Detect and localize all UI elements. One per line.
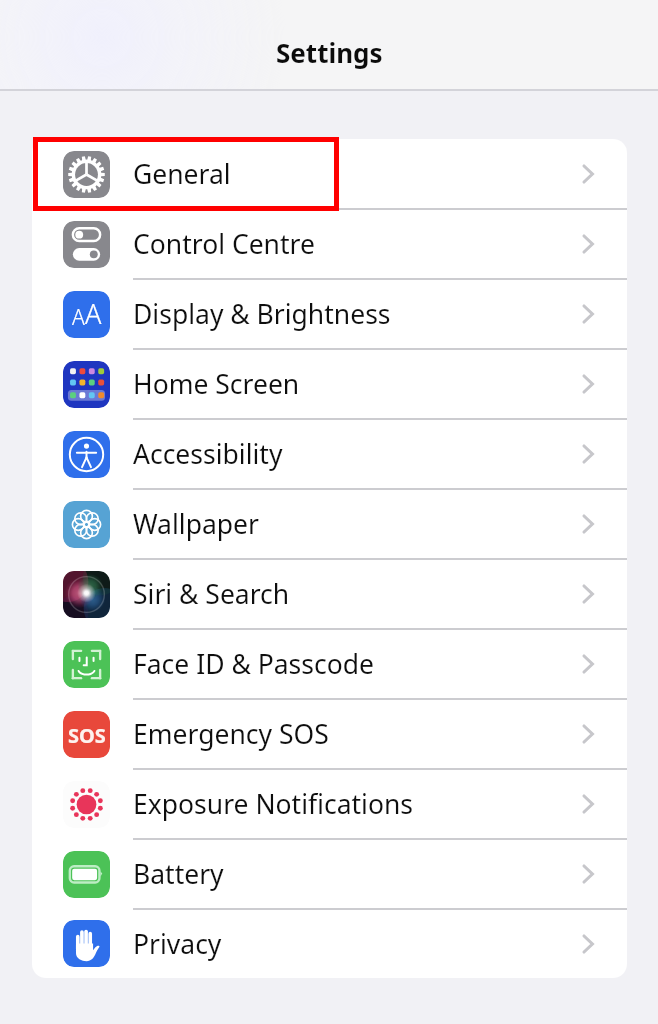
staticText: Emergency SOS (133, 716, 329, 752)
staticText: Privacy (133, 926, 222, 962)
button[interactable]: Siri & Search (32, 559, 627, 629)
button[interactable]: Control Centre (32, 209, 627, 279)
button[interactable]: Home Screen (32, 349, 627, 419)
staticText: SOS (68, 722, 106, 749)
button[interactable]: Accessibility (32, 419, 627, 489)
staticText: A (85, 295, 102, 332)
button[interactable]: Exposure Notifications (32, 769, 627, 839)
staticText: Face ID & Passcode (133, 646, 374, 682)
staticText: Exposure Notifications (133, 786, 414, 822)
staticText: Battery (133, 856, 224, 892)
button[interactable]: Emergency SOS (32, 699, 627, 769)
button[interactable]: Privacy (32, 909, 627, 978)
button[interactable]: Wallpaper (32, 489, 627, 559)
button[interactable]: Battery (32, 839, 627, 909)
staticText: Home Screen (133, 366, 300, 402)
button[interactable]: Face ID & Passcode (32, 629, 627, 699)
staticText: Display & Brightness (133, 296, 391, 332)
button[interactable]: Display & Brightness (32, 279, 627, 349)
staticText: A (72, 303, 85, 332)
button[interactable]: General (32, 139, 627, 209)
staticText: Accessibility (133, 436, 283, 472)
staticText: Settings (276, 35, 383, 70)
staticText: Wallpaper (133, 506, 260, 542)
staticText: Siri & Search (133, 576, 290, 612)
staticText: General (133, 156, 231, 192)
staticText: Control Centre (133, 226, 315, 262)
